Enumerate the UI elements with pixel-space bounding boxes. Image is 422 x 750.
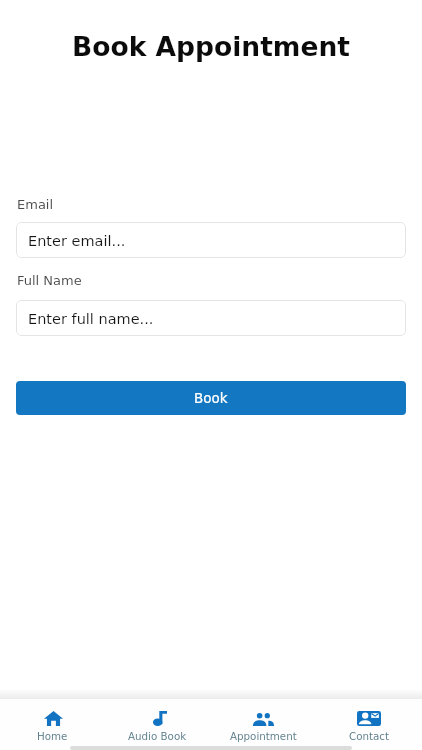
staticText: Book Appointment <box>0 31 422 62</box>
staticText: Enter email... <box>28 233 126 250</box>
other: Home <box>44 711 63 726</box>
other: Contact <box>357 711 381 726</box>
button[interactable]: Audio Book <box>105 699 210 750</box>
staticText: Audio Book <box>128 730 187 742</box>
button[interactable]: Home <box>0 699 105 750</box>
staticText: Contact <box>349 730 390 742</box>
staticText: Full Name <box>17 273 82 288</box>
other: Appointment <box>253 713 274 726</box>
button[interactable]: Book <box>16 381 406 415</box>
button[interactable]: Enter email... <box>16 222 406 258</box>
staticText: Home <box>37 730 68 742</box>
staticText: Enter full name... <box>28 311 154 328</box>
staticText: Book <box>194 390 228 406</box>
staticText: Email <box>17 197 54 212</box>
button[interactable]: Appointment <box>210 699 316 750</box>
staticText: Appointment <box>230 730 297 742</box>
button[interactable]: Enter full name... <box>16 300 406 336</box>
other: Audio Book <box>153 711 167 726</box>
button[interactable]: Contact <box>316 699 422 750</box>
